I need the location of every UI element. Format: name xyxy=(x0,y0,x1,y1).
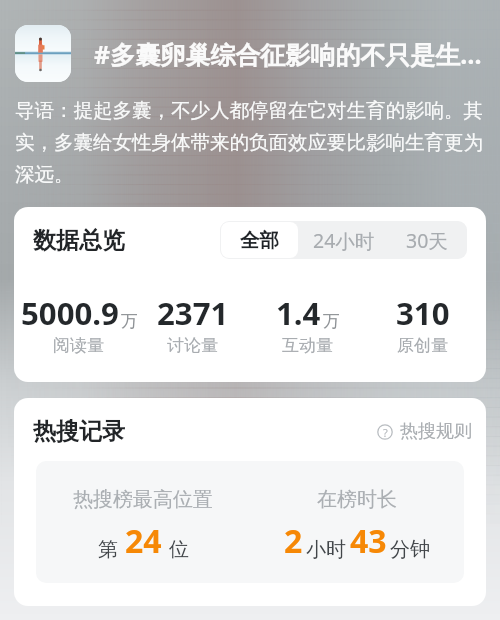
staticText: ? xyxy=(383,425,388,440)
staticText: #多囊卵巢综合征影响的不只是生… xyxy=(94,37,482,71)
button[interactable]: Topic cover image xyxy=(15,25,71,82)
staticText: 1.4 xyxy=(276,292,321,334)
staticText: 热搜规则 xyxy=(400,420,472,443)
button[interactable]: 24小时 xyxy=(299,221,391,259)
staticText: 万 xyxy=(323,311,340,332)
staticText: 5000.9 xyxy=(21,292,119,334)
staticText: 24小时 xyxy=(313,227,375,254)
staticText: 导语：提起多囊，不少人都停留在它对生育的影响。其实，多囊给女性身体带来的负面效应… xyxy=(15,98,487,186)
staticText: 热搜记录 xyxy=(33,417,125,446)
staticText: 2371 xyxy=(157,292,229,334)
staticText: 第 xyxy=(98,537,118,562)
staticText: 2 xyxy=(284,519,303,563)
staticText: 在榜时长 xyxy=(317,487,397,512)
staticText: 310 xyxy=(396,292,450,334)
staticText: 数据总览 xyxy=(33,226,125,255)
staticText: 分钟 xyxy=(390,537,430,562)
button[interactable]: 30天 xyxy=(391,221,467,259)
button[interactable]: 全部 xyxy=(221,222,298,258)
staticText: 阅读量 xyxy=(53,335,104,356)
staticText: 全部 xyxy=(240,228,279,253)
staticText: 热搜榜最高位置 xyxy=(73,487,213,512)
staticText: 讨论量 xyxy=(167,335,218,356)
staticText: 小时 xyxy=(306,537,346,562)
staticText: 24 xyxy=(125,519,162,563)
staticText: 43 xyxy=(350,519,387,563)
staticText: 万 xyxy=(121,311,135,332)
staticText: 30天 xyxy=(406,227,448,254)
button[interactable]: ? xyxy=(373,416,476,447)
staticText: 原创量 xyxy=(397,335,448,356)
staticText: 互动量 xyxy=(282,335,333,356)
staticText: 位 xyxy=(169,537,189,562)
